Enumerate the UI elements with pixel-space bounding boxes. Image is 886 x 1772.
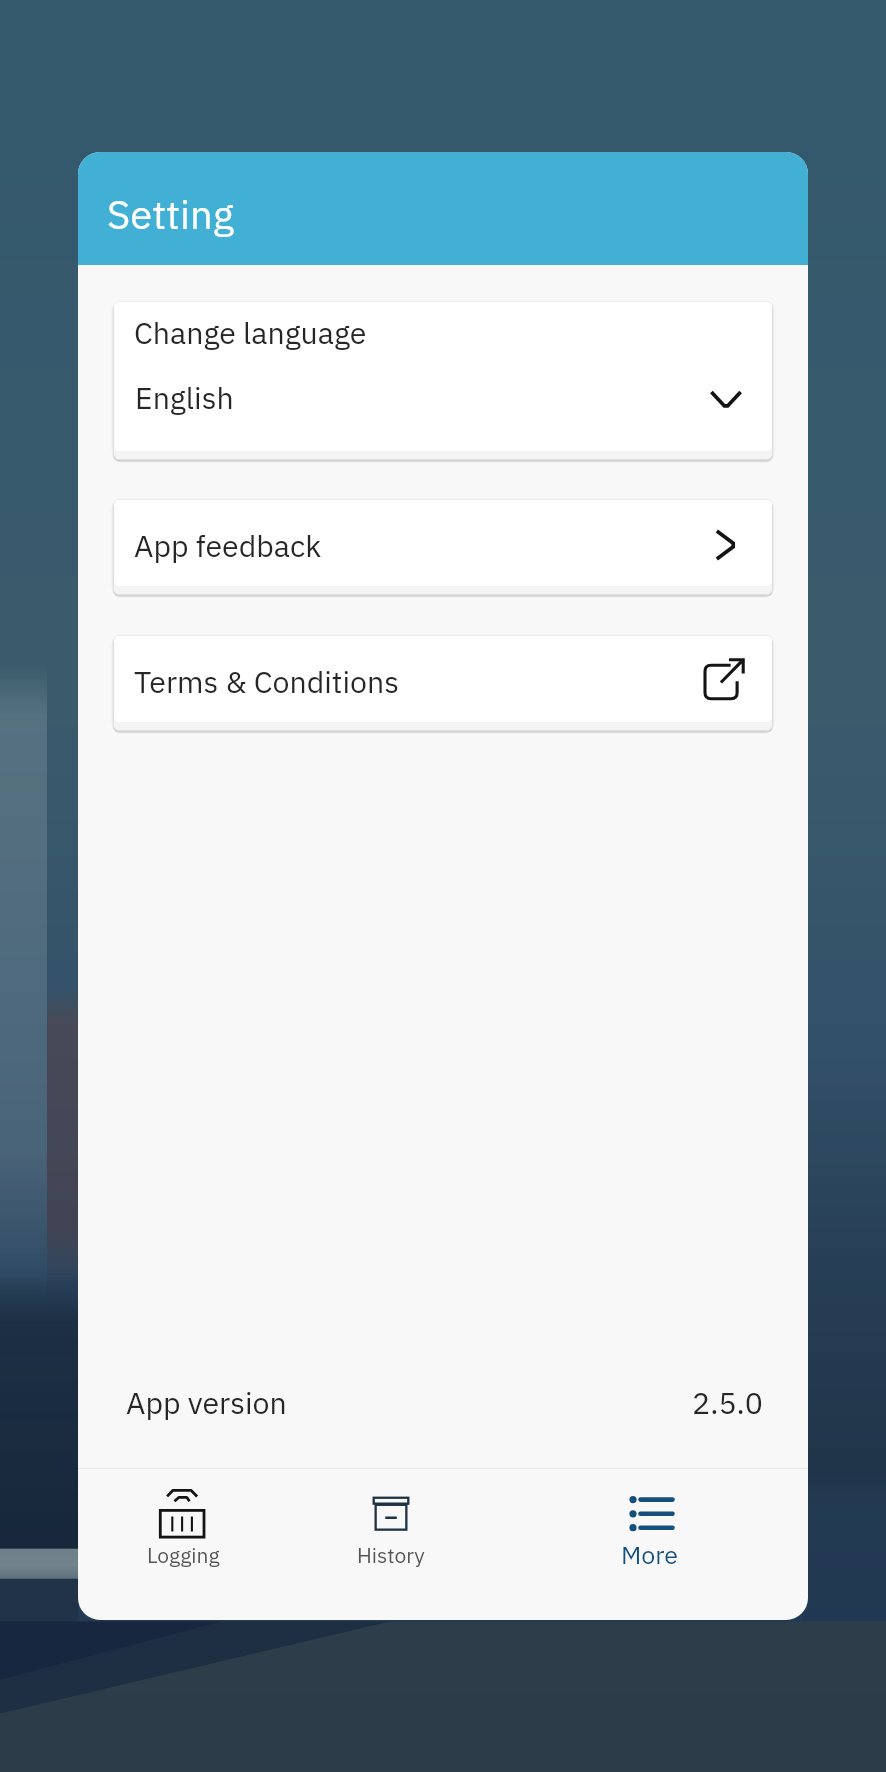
staticText: Terms & Conditions [134,662,399,701]
button[interactable]: Logging [98,1469,268,1620]
staticText: Logging [147,1541,220,1568]
other: Select language [704,377,748,421]
staticText: Change language [134,313,367,352]
other: Open app feedback [705,525,745,565]
button[interactable]: Terms & Conditions [114,636,772,722]
button[interactable]: More [565,1469,735,1620]
other: Open terms and conditions [696,658,746,704]
staticText: App feedback [134,526,322,565]
staticText: App version [126,1383,287,1422]
staticText: More [621,1538,679,1571]
staticText: Setting [107,188,234,240]
staticText: English [135,378,234,417]
button[interactable]: App feedback [114,500,772,586]
staticText: History [357,1541,425,1568]
button[interactable]: Change language [114,302,772,451]
staticText: 2.5.0 [692,1383,764,1422]
button[interactable]: History [306,1469,476,1620]
